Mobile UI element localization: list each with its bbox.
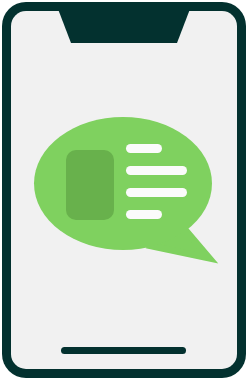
button[interactable]: Phone messaging illustration [0, 0, 248, 380]
